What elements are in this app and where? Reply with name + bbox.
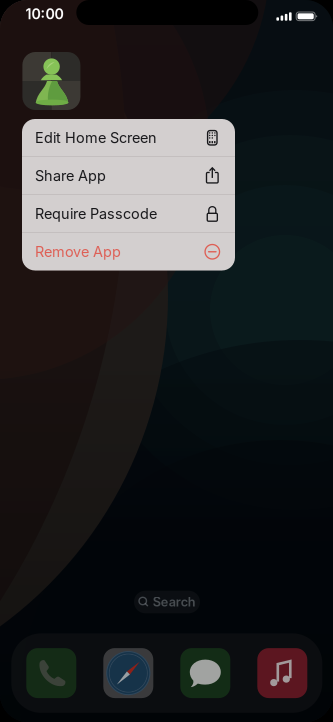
staticText: Search <box>153 594 196 610</box>
button[interactable]: Remove App <box>22 233 235 270</box>
staticText: Share App <box>35 167 106 184</box>
staticText: Edit Home Screen <box>35 129 157 146</box>
button[interactable]: Music <box>257 648 307 698</box>
staticText: Remove App <box>35 243 121 260</box>
button[interactable]: Search <box>134 591 200 613</box>
button[interactable]: Messages <box>180 648 230 698</box>
button[interactable]: Phone <box>26 648 76 698</box>
button[interactable]: Require Passcode <box>22 195 235 232</box>
button[interactable]: Edit Home Screen <box>22 119 235 156</box>
staticText: 10:00 <box>25 5 63 22</box>
button[interactable]: Share App <box>22 157 235 194</box>
staticText: Require Passcode <box>35 205 157 222</box>
button[interactable]: Safari <box>103 648 153 698</box>
